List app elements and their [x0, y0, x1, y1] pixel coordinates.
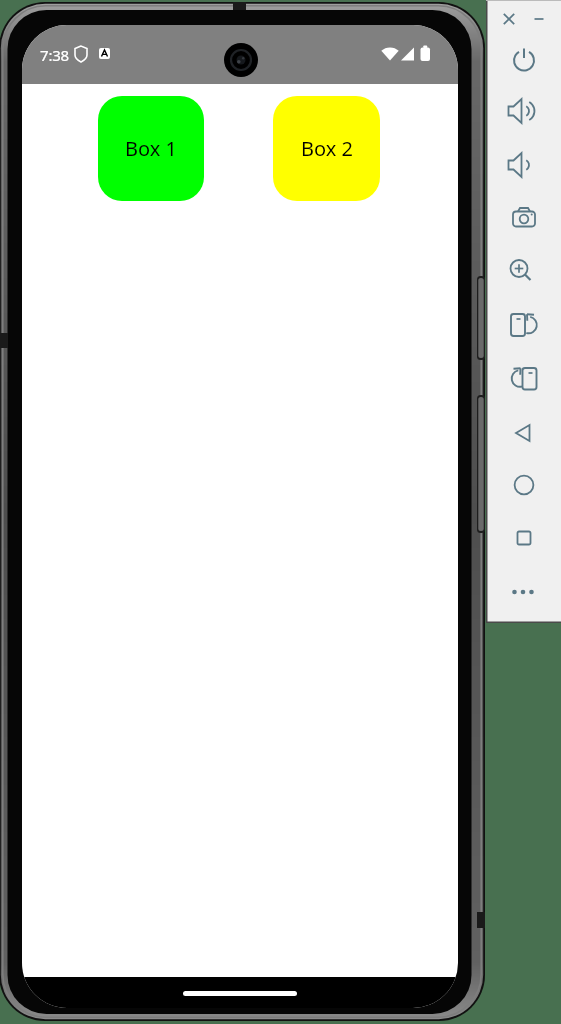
button[interactable] [504, 305, 544, 345]
staticText: 7:38 [40, 45, 69, 65]
button[interactable] [501, 413, 541, 453]
button[interactable] [505, 358, 545, 398]
button[interactable] [519, 0, 559, 39]
button[interactable]: Box 1 [98, 96, 204, 201]
button[interactable] [504, 198, 544, 238]
button[interactable] [489, 0, 529, 39]
button[interactable] [501, 251, 541, 291]
button[interactable] [504, 465, 544, 505]
button[interactable] [504, 39, 544, 79]
button[interactable] [504, 518, 544, 558]
button[interactable] [503, 572, 543, 612]
button[interactable] [503, 145, 543, 185]
button[interactable]: Box 2 [273, 96, 380, 201]
button[interactable] [503, 91, 543, 131]
staticText: Box 1 [125, 135, 177, 162]
staticText: Box 2 [301, 135, 353, 162]
